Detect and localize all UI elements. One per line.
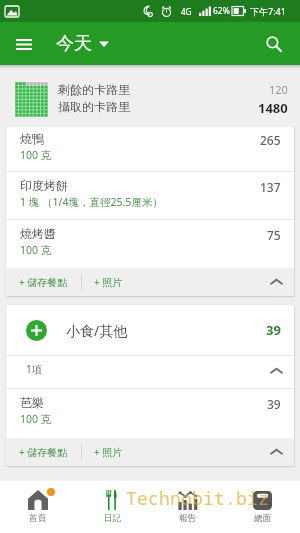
button[interactable]: 日記 <box>75 481 150 533</box>
button[interactable]: + 照片 <box>82 270 135 294</box>
button[interactable]: Collapse <box>262 438 290 466</box>
staticText: 75 <box>267 227 281 243</box>
staticText: 100 克 <box>20 243 52 257</box>
staticText: 燒鴨 <box>20 131 44 146</box>
staticText: 1480 <box>258 99 288 117</box>
staticText: 總面 <box>254 513 271 524</box>
staticText: 印度烤餅 <box>20 178 68 193</box>
staticText: 100 克 <box>20 412 52 426</box>
button[interactable]: 剩餘的卡路里 <box>0 82 300 122</box>
staticText: 100 克 <box>20 148 52 162</box>
button[interactable]: 今天 <box>56 32 113 55</box>
button[interactable]: 小食/其他 <box>6 305 294 355</box>
staticText: 39 <box>267 396 281 412</box>
staticText: 265 <box>260 132 281 148</box>
button[interactable]: Search <box>258 28 290 60</box>
button[interactable]: 燒鴨 <box>6 127 294 171</box>
staticText: 4G <box>181 6 192 17</box>
button[interactable]: 燒烤醬 <box>6 220 294 268</box>
staticText: 120 <box>269 82 288 97</box>
staticText: 攝取的卡路里 <box>58 99 130 114</box>
button[interactable]: + 儲存餐點 <box>6 440 81 464</box>
button[interactable]: 總面 <box>225 481 300 533</box>
staticText: 報告 <box>179 513 196 524</box>
button[interactable]: Collapse <box>262 268 290 296</box>
staticText: 今天 <box>56 32 92 55</box>
staticText: 137 <box>260 179 281 195</box>
staticText: + 照片 <box>94 275 123 289</box>
staticText: 39 <box>266 321 281 339</box>
staticText: Technobit.biz <box>126 486 269 511</box>
button[interactable]: 報告 <box>150 481 225 533</box>
staticText: 1 塊 （1/4塊，直徑25.5厘米） <box>20 195 163 209</box>
button[interactable]: 首頁 <box>0 481 75 533</box>
staticText: 下午7:41 <box>250 5 286 17</box>
staticText: 芭樂 <box>20 395 44 410</box>
staticText: + 照片 <box>94 445 123 459</box>
button[interactable]: + 照片 <box>82 440 135 464</box>
staticText: 燒烤醬 <box>20 226 56 241</box>
staticText: 小食/其他 <box>66 321 128 340</box>
button[interactable]: 芭樂 <box>6 389 294 438</box>
button[interactable]: 1項 <box>6 356 294 388</box>
staticText: + 儲存餐點 <box>19 275 68 289</box>
staticText: 1項 <box>26 362 42 376</box>
staticText: 剩餘的卡路里 <box>58 82 130 97</box>
staticText: 日記 <box>104 513 121 524</box>
button[interactable]: Menu <box>8 28 40 60</box>
staticText: 首頁 <box>29 513 46 524</box>
staticText: 62% <box>213 5 230 17</box>
button[interactable]: 印度烤餅 <box>6 172 294 219</box>
staticText: + 儲存餐點 <box>19 445 68 459</box>
button[interactable]: + 儲存餐點 <box>6 270 81 294</box>
